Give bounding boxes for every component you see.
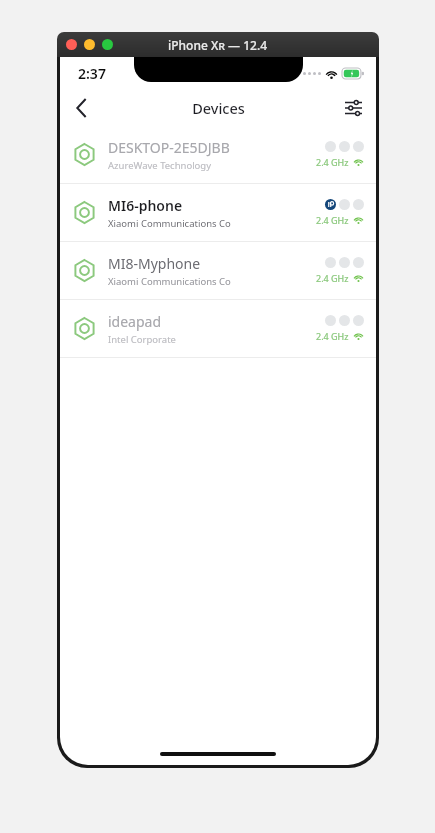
staticText: ideapad: [108, 312, 162, 331]
button[interactable]: Close: [66, 39, 77, 50]
staticText: Devices: [192, 98, 245, 118]
staticText: iPhone Xʀ — 12.4: [168, 37, 268, 53]
staticText: AzureWave Technology: [108, 159, 212, 172]
button[interactable]: Filter: [330, 89, 376, 126]
button[interactable]: MI8-Myphone: [60, 242, 376, 299]
staticText: DESKTOP-2E5DJBB: [108, 138, 230, 157]
button[interactable]: Zoom: [102, 39, 113, 50]
staticText: 2.4 GHz: [316, 156, 349, 168]
staticText: 2.4 GHz: [316, 272, 349, 284]
staticText: MI6-phone: [108, 196, 183, 215]
button[interactable]: DESKTOP-2E5DJBB: [60, 126, 376, 183]
staticText: MI8-Myphone: [108, 254, 201, 273]
staticText: 2.4 GHz: [316, 330, 349, 342]
staticText: 2:37: [78, 64, 106, 83]
staticText: 2.4 GHz: [316, 214, 349, 226]
button[interactable]: Minimize: [84, 39, 95, 50]
staticText: Intel Corporate: [108, 333, 176, 346]
staticText: Xiaomi Communications Co: [108, 275, 231, 288]
button[interactable]: MI6-phone: [60, 184, 376, 241]
staticText: Xiaomi Communications Co: [108, 217, 231, 230]
button[interactable]: ideapad: [60, 300, 376, 357]
button[interactable]: Back: [60, 89, 102, 126]
